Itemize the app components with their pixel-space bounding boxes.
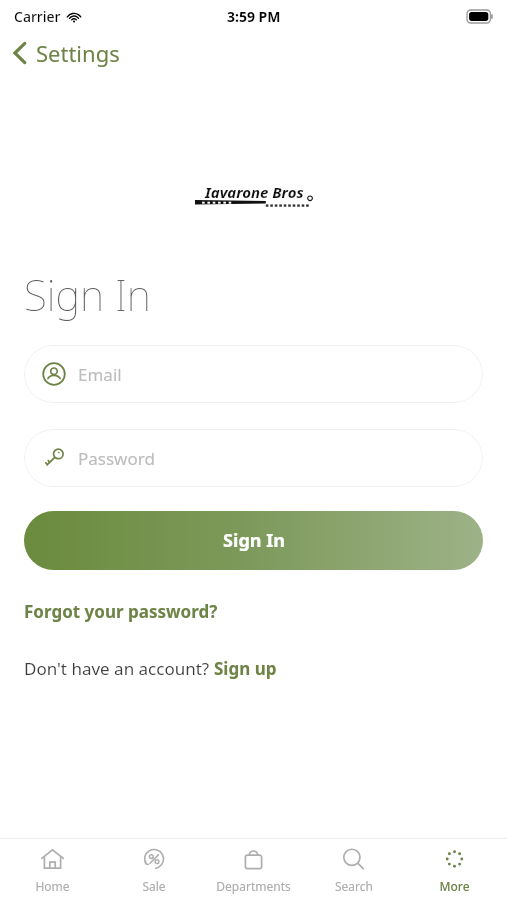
- staticText: Sign up: [214, 657, 277, 680]
- button[interactable]: Departments: [206, 842, 301, 898]
- staticText: Password: [78, 447, 155, 470]
- staticText: Search: [335, 878, 373, 894]
- button[interactable]: Sale: [106, 842, 201, 898]
- staticText: More: [439, 878, 470, 894]
- staticText: Sign In: [223, 528, 285, 553]
- button[interactable]: Sign In: [24, 511, 483, 570]
- button[interactable]: Sign up: [214, 657, 277, 680]
- button[interactable]: More: [407, 842, 502, 898]
- button[interactable]: Home: [5, 842, 100, 898]
- staticText: Carrier: [14, 7, 61, 26]
- staticText: Email: [78, 363, 122, 386]
- button[interactable]: Password: [24, 429, 483, 487]
- staticText: Don't have an account?: [24, 657, 214, 680]
- button[interactable]: Email: [24, 345, 483, 403]
- staticText: Iavarone Bros: [205, 182, 304, 202]
- staticText: 3:59 PM: [227, 7, 281, 26]
- staticText: Settings: [36, 38, 120, 68]
- button[interactable]: Forgot your password?: [24, 598, 218, 625]
- staticText: Forgot your password?: [24, 600, 218, 623]
- staticText: Sale: [142, 878, 166, 894]
- staticText: Sign In: [24, 266, 151, 323]
- staticText: Departments: [216, 878, 291, 894]
- button[interactable]: Search: [306, 842, 401, 898]
- button[interactable]: Back to Settings: [0, 34, 132, 72]
- staticText: Home: [35, 878, 70, 894]
